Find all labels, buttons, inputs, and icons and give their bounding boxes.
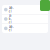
staticText: Label (9, 14, 12, 24)
staticText: Label (9, 6, 14, 13)
button[interactable]: Label (2, 14, 48, 23)
button[interactable]: Label (2, 5, 48, 14)
staticText: Label (9, 25, 14, 32)
button[interactable]: Label (2, 24, 48, 33)
